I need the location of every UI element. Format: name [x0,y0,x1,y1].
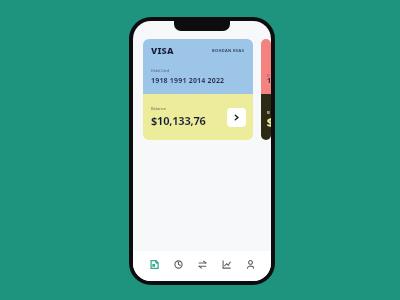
staticText: Balance [151,106,167,111]
staticText: $ [267,114,271,129]
staticText: $10,133,76 [151,113,206,128]
button[interactable]: Profile [239,251,261,277]
staticText: BOHDAN KVAS [212,48,245,53]
staticText: 1 [267,76,271,86]
button[interactable]: Documents [143,251,165,277]
staticText: D [267,73,270,78]
button[interactable]: Transfers [191,251,213,277]
button[interactable]: History [167,251,189,277]
button[interactable]: VISA [143,39,253,140]
button[interactable]: Statistics [215,251,237,277]
staticText: 1918 1991 2014 2022 [151,76,225,86]
staticText: VISA [151,44,174,56]
button[interactable]: Card details [227,108,246,127]
button[interactable]: Next card [261,39,271,140]
staticText: Debit Card [151,68,170,73]
staticText: B [267,110,270,115]
